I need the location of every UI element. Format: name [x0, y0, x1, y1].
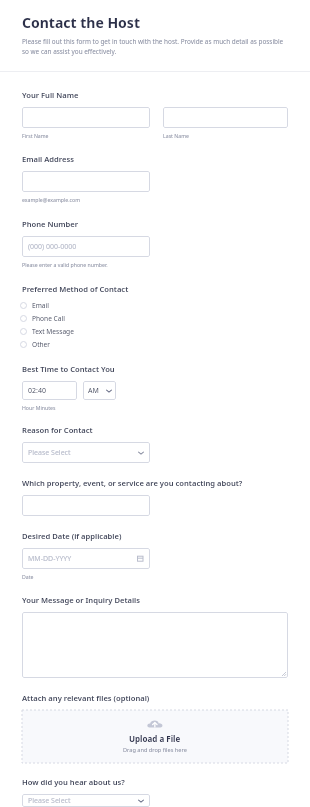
staticText: Desired Date (if applicable): [22, 531, 122, 541]
staticText: 02:40: [28, 386, 46, 396]
staticText: Which property, event, or service are yo…: [22, 478, 243, 488]
button[interactable]: Phone Number: [22, 236, 150, 257]
staticText: MM-DD-YYYY: [28, 554, 72, 564]
staticText: How did you hear about us?: [22, 777, 125, 787]
button[interactable]: First Name: [22, 107, 150, 128]
staticText: Upload a File: [129, 733, 181, 744]
staticText: Your Message or Inquiry Details: [22, 595, 140, 605]
staticText: Phone Call: [32, 314, 65, 323]
staticText: Your Full Name: [22, 90, 79, 100]
button[interactable]: Text Message: [20, 325, 310, 337]
staticText: Text Message: [32, 327, 74, 336]
staticText: Phone Number: [22, 219, 79, 229]
staticText: First Name: [22, 132, 49, 139]
button[interactable]: Email: [20, 299, 310, 311]
staticText: Other: [32, 340, 51, 349]
button[interactable]: Reason for Contact: [22, 442, 150, 463]
button[interactable]: How did you hear about us: [22, 794, 150, 807]
staticText: Preferred Method of Contact: [22, 284, 129, 294]
button[interactable]: AM or PM: [83, 381, 116, 400]
staticText: Reason for Contact: [22, 425, 93, 435]
button[interactable]: Other: [20, 338, 310, 350]
button[interactable]: Desired Date: [22, 548, 150, 569]
button[interactable]: Last Name: [163, 107, 288, 128]
button[interactable]: Email Address: [22, 171, 150, 192]
staticText: Last Name: [163, 132, 189, 139]
staticText: AM: [88, 386, 99, 396]
staticText: Please fill out this form to get in touc…: [22, 37, 288, 56]
staticText: example@example.com: [22, 196, 81, 203]
staticText: Please Select: [28, 796, 71, 806]
button[interactable]: Upload a File: [22, 710, 288, 763]
staticText: Best Time to Contact You: [22, 364, 115, 374]
staticText: Email Address: [22, 154, 74, 164]
button[interactable]: Phone Call: [20, 312, 310, 324]
button[interactable]: Your Message or Inquiry Details: [22, 612, 288, 678]
staticText: Hour Minutes: [22, 404, 56, 411]
staticText: Attach any relevant files (optional): [22, 693, 150, 703]
staticText: Please Select: [28, 448, 71, 458]
button[interactable]: Property, event or service: [22, 495, 150, 516]
staticText: Contact the Host: [22, 13, 140, 32]
staticText: (000) 000-0000: [28, 242, 77, 252]
staticText: Please enter a valid phone number.: [22, 261, 108, 268]
button[interactable]: Hour and minutes: [22, 381, 77, 400]
staticText: Date: [22, 573, 34, 580]
staticText: Email: [32, 301, 49, 310]
staticText: Drag and drop files here: [123, 746, 187, 754]
